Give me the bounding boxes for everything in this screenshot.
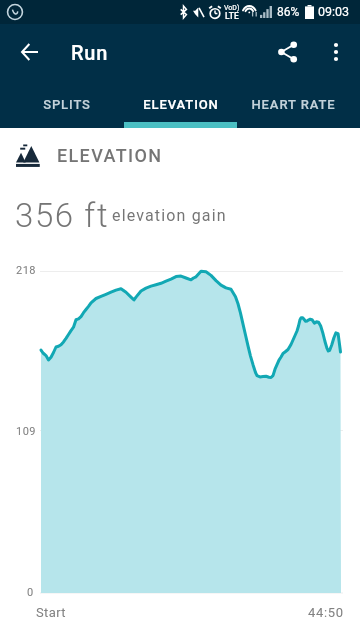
staticText: LTE	[225, 11, 239, 21]
staticText: Start	[36, 605, 67, 620]
staticText: 218	[16, 264, 37, 277]
staticText: 0	[27, 586, 34, 599]
staticText: ELEVATION	[57, 145, 163, 166]
staticText: HEART RATE	[251, 97, 336, 112]
button[interactable]: SPLITS	[10, 80, 123, 128]
staticText: VoD)	[224, 4, 240, 12]
button[interactable]: More options	[312, 28, 360, 76]
button[interactable]: Back	[4, 28, 52, 76]
staticText: 86%	[277, 5, 300, 19]
staticText: 356 ft	[15, 196, 110, 235]
staticText: elevation gain	[112, 206, 227, 225]
button[interactable]: HEART RATE	[236, 80, 350, 128]
staticText: 09:03	[318, 4, 350, 19]
button[interactable]: Share	[264, 28, 312, 76]
staticText: SPLITS	[43, 97, 91, 112]
staticText: 44:50	[308, 605, 344, 620]
button[interactable]: ELEVATION	[124, 80, 237, 128]
staticText: Run	[71, 41, 109, 64]
staticText: 109	[16, 425, 37, 438]
staticText: ELEVATION	[143, 97, 219, 112]
